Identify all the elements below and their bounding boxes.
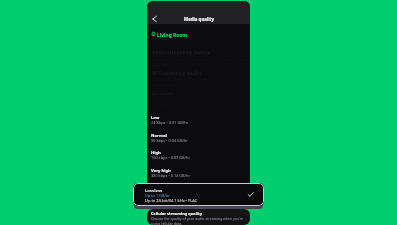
staticText: 96 kbps • 0.04 GB/hr [151, 138, 188, 143]
staticText: Living Room [157, 32, 188, 39]
staticText: Up to 24-bit/44.1 kHz • FLAC [145, 198, 198, 203]
button[interactable]: Very high [147, 164, 250, 182]
staticText: Cellular streaming quality [151, 211, 202, 216]
staticText: High [151, 150, 161, 156]
button[interactable]: High [147, 146, 250, 164]
button[interactable]: Cellular streaming quality [147, 209, 250, 225]
button[interactable]: Back [149, 14, 159, 24]
staticText: Very high [151, 168, 171, 174]
staticText: Up to 1 GB/hr [145, 193, 170, 198]
button[interactable]: Lossless [133, 183, 264, 206]
staticText: using cellular data. [151, 221, 183, 225]
staticText: Choose the quality of your audio streami… [151, 216, 244, 221]
staticText: Automatic [152, 91, 174, 97]
staticText: 160 kbps • 0.07 GB/hr [151, 155, 190, 160]
staticText: Wi-Fi streaming quality [152, 70, 202, 76]
staticText: Low [151, 115, 160, 121]
other: Selected [246, 190, 255, 199]
staticText: 24 Kbps • 0.01 GB/hr [151, 120, 189, 125]
button[interactable]: Low [147, 111, 250, 129]
staticText: Audio streaming quality [152, 49, 210, 56]
staticText: 320 kbps • 0.14 GB/hr [151, 173, 190, 178]
staticText: Normal [151, 133, 167, 139]
staticText: Media quality [184, 16, 214, 22]
button[interactable]: Normal [147, 129, 250, 147]
staticText: Lossless [145, 188, 163, 194]
